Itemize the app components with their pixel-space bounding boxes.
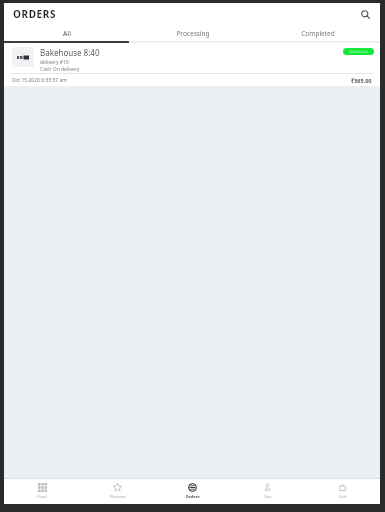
staticText: Completed xyxy=(301,29,335,38)
button[interactable]: Processing xyxy=(130,25,255,41)
button[interactable]: Reviews xyxy=(80,479,155,504)
button[interactable]: Completed xyxy=(255,25,380,41)
button[interactable]: You xyxy=(230,479,305,504)
staticText: delivered xyxy=(349,49,368,55)
button[interactable]: Bakehouse 8:40 xyxy=(4,43,380,86)
button[interactable]: Search xyxy=(356,5,374,23)
staticText: You xyxy=(264,494,272,500)
staticText: All xyxy=(63,29,71,38)
staticText: Food xyxy=(37,494,47,500)
staticText: Cash On delivery xyxy=(40,66,80,73)
button[interactable]: delivered xyxy=(343,48,374,55)
staticText: Orders xyxy=(185,494,200,500)
button[interactable]: Food xyxy=(4,479,80,504)
staticText: Oct 15,2020 6:33:57 am xyxy=(12,77,67,84)
staticText: Cart xyxy=(338,494,347,500)
button[interactable]: Orders xyxy=(155,479,230,504)
staticText: Reviews xyxy=(110,494,126,500)
staticText: ₹565.00 xyxy=(351,77,372,84)
staticText: Processing xyxy=(176,29,210,38)
button[interactable]: All xyxy=(4,25,130,41)
staticText: ORDERS xyxy=(13,7,57,21)
button[interactable]: Cart xyxy=(305,479,380,504)
staticText: Bakehouse 8:40 xyxy=(40,47,100,58)
staticText: delivery #10 xyxy=(40,59,69,66)
